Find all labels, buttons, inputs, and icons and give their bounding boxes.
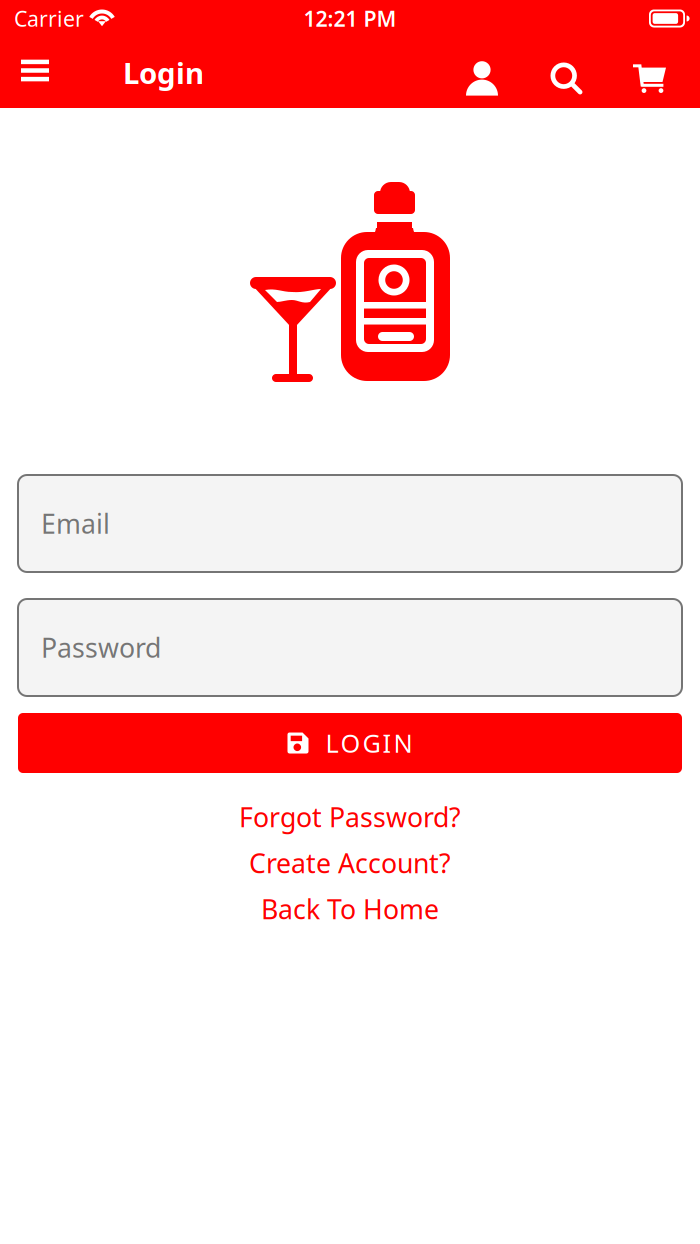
- staticText: N: [393, 726, 412, 760]
- staticText: Back To Home: [261, 891, 439, 927]
- button[interactable]: Password: [18, 599, 682, 696]
- staticText: I: [382, 726, 391, 760]
- button[interactable]: Account: [448, 37, 516, 108]
- button[interactable]: Email: [18, 475, 682, 572]
- staticText: Forgot Password?: [239, 799, 461, 835]
- button[interactable]: Forgot Password?: [0, 794, 700, 840]
- staticText: Login: [123, 53, 204, 92]
- button[interactable]: Back To Home: [0, 886, 700, 932]
- staticText: Carrier: [14, 4, 84, 33]
- staticText: Password: [41, 630, 161, 665]
- button[interactable]: L: [18, 713, 682, 773]
- button[interactable]: Create Account?: [0, 840, 700, 886]
- staticText: 12:21 PM: [303, 4, 396, 33]
- staticText: Create Account?: [249, 845, 451, 881]
- button[interactable]: Search: [516, 37, 599, 108]
- staticText: O: [340, 726, 360, 760]
- button[interactable]: Menu: [0, 37, 70, 108]
- staticText: L: [325, 726, 338, 760]
- button[interactable]: Cart: [599, 37, 700, 108]
- staticText: Email: [41, 506, 110, 541]
- staticText: G: [362, 726, 380, 760]
